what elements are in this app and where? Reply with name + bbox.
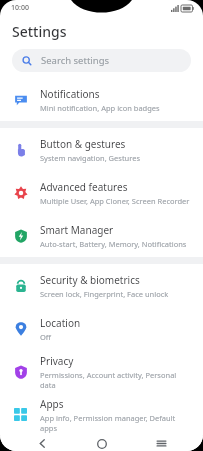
staticText: Security & biometrics [40,273,140,287]
staticText: Auto-start, Battery, Memory, Notificatio… [40,239,187,249]
staticText: Screen lock, Fingerprint, Face unlock [40,289,169,299]
staticText: Permissions, Account activity, Personal … [40,370,193,390]
staticText: 10:00 [11,3,29,13]
button[interactable]: Location [0,307,203,350]
staticText: Location [40,316,81,330]
button[interactable]: Button & gestures [0,128,203,171]
staticText: App info, Permission manager, Default ap… [40,413,193,433]
staticText: Off [40,332,52,342]
button[interactable]: Recent apps [144,436,178,451]
staticText: Advanced features [40,180,128,194]
button[interactable]: Back [25,436,59,451]
button[interactable]: Home [85,436,119,451]
button[interactable]: Smart Manager [0,214,203,257]
button[interactable]: Security & biometrics [0,264,203,307]
button[interactable]: Search settings [12,49,191,72]
staticText: Privacy [40,354,74,368]
staticText: System navigation, Gestures [40,153,141,163]
button[interactable]: Privacy [0,350,203,393]
button[interactable]: Notifications [0,78,203,121]
staticText: Search settings [41,54,110,67]
staticText: Button & gestures [40,137,126,151]
button[interactable]: Apps [0,393,203,436]
staticText: Settings [12,22,67,41]
staticText: Mini notification, App icon badges [40,103,160,113]
staticText: Apps [40,397,64,411]
staticText: Multiple User, App Cloner, Screen Record… [40,196,190,206]
staticText: Notifications [40,87,100,101]
button[interactable]: Advanced features [0,171,203,214]
staticText: Smart Manager [40,223,114,237]
